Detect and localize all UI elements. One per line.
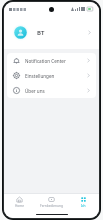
button[interactable]: Über uns bbox=[7, 83, 96, 98]
staticText: BT bbox=[37, 29, 45, 37]
button[interactable]: Profile bbox=[67, 194, 99, 210]
button[interactable]: Home bbox=[4, 194, 35, 210]
staticText: Notification Center bbox=[25, 58, 66, 64]
staticText: Einstellungen bbox=[25, 73, 55, 79]
button[interactable]: BT bbox=[4, 16, 99, 49]
staticText: Ich bbox=[81, 204, 86, 208]
button[interactable]: Einstellungen bbox=[7, 68, 96, 83]
button[interactable]: Remote bbox=[35, 194, 67, 210]
staticText: Über uns bbox=[25, 88, 45, 94]
staticText: Home bbox=[15, 204, 25, 208]
button[interactable]: Notification Center bbox=[7, 53, 96, 68]
staticText: Fernbedienung bbox=[40, 204, 63, 208]
